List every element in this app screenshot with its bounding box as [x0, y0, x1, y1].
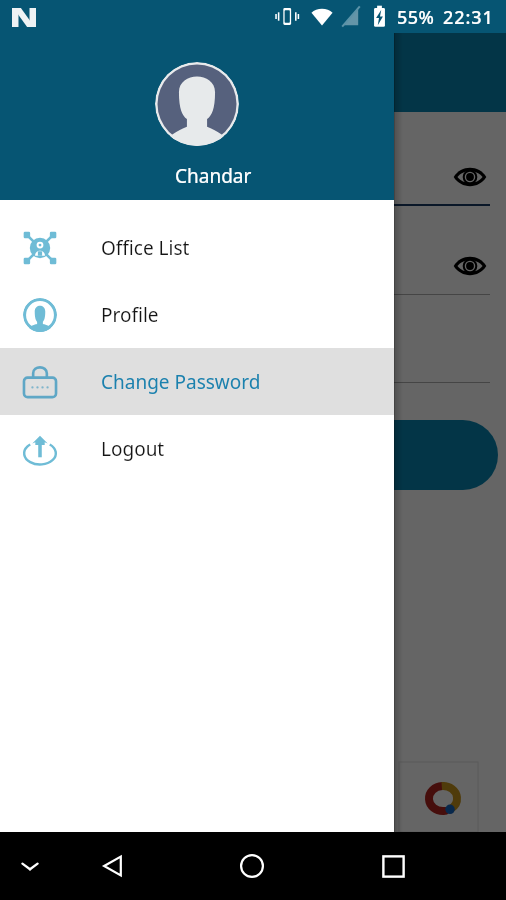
button[interactable]: Back [73, 832, 153, 900]
button[interactable] [8, 420, 498, 490]
button[interactable]: Profile [0, 281, 394, 348]
staticText: 55% [397, 5, 435, 30]
button[interactable]: Hide keyboard [0, 832, 60, 900]
staticText: Change Password [101, 369, 261, 395]
button[interactable]: Logout [0, 415, 394, 482]
button[interactable]: Home [212, 832, 292, 900]
button[interactable]: Change Password [0, 348, 394, 415]
staticText: 22:31 [443, 5, 494, 30]
button[interactable]: Recents [353, 832, 433, 900]
staticText: Profile [101, 302, 159, 328]
staticText: Office List [101, 235, 190, 261]
button[interactable]: Office List [0, 214, 394, 281]
staticText: Logout [101, 436, 165, 462]
staticText: Chandar [175, 163, 252, 189]
